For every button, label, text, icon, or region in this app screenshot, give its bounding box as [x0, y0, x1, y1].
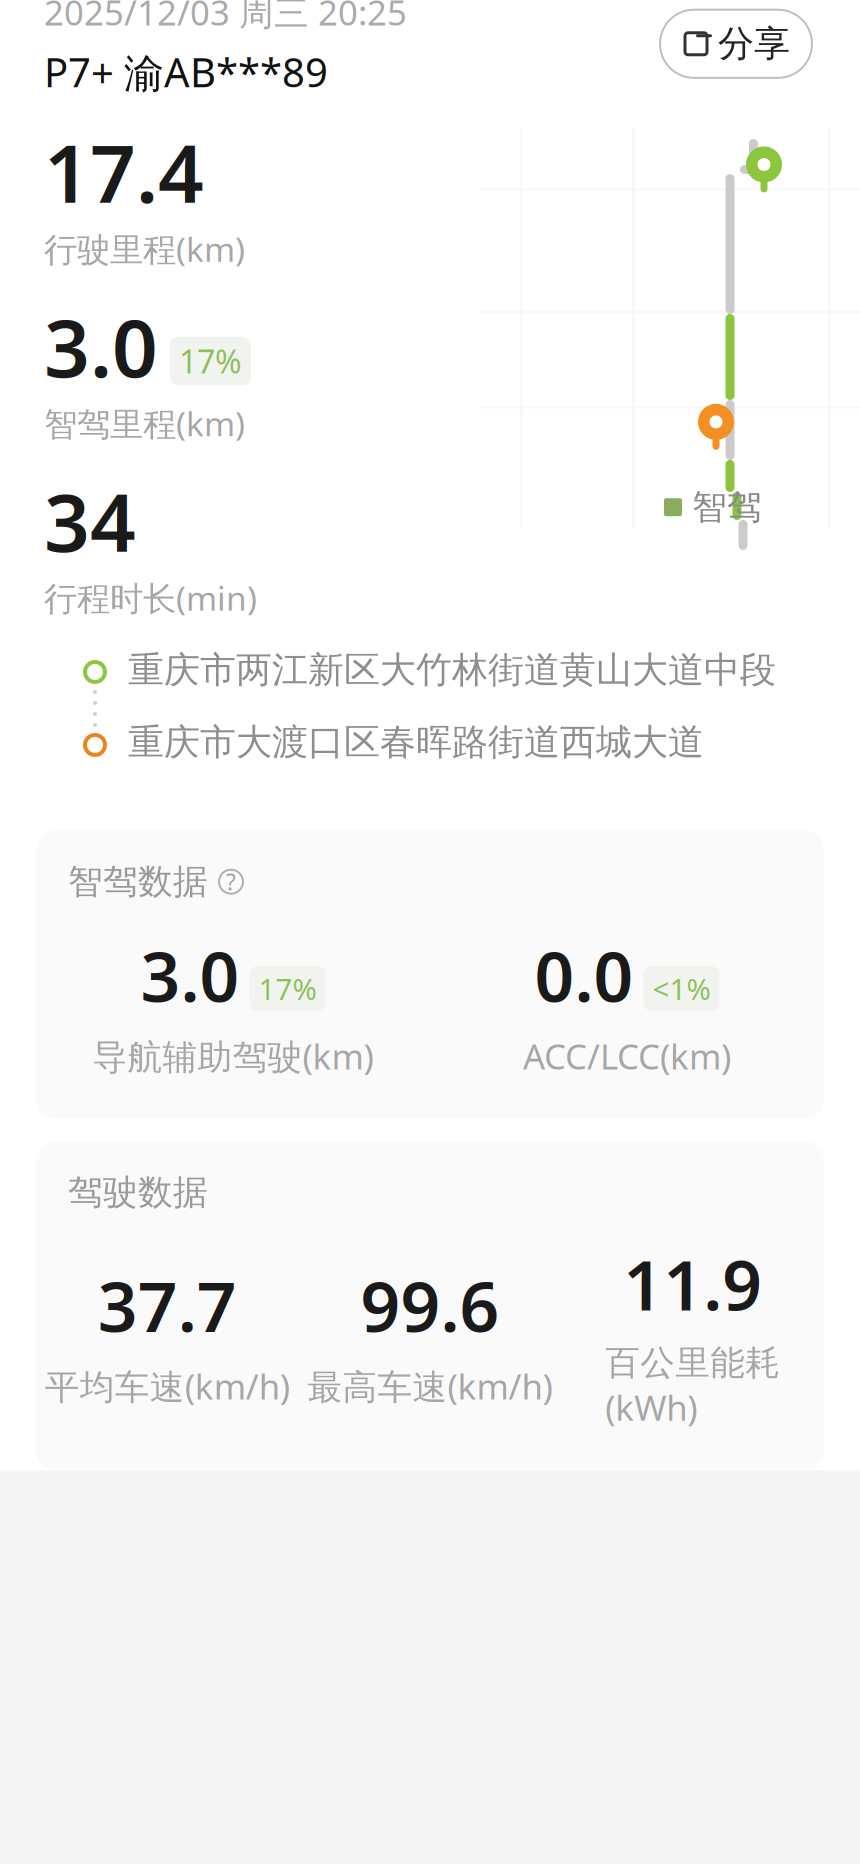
staticText: 平均车速(km/h)	[45, 1363, 290, 1409]
staticText: 百公里能耗(kWh)	[605, 1342, 780, 1430]
staticText: 分享	[718, 22, 790, 66]
staticText: 17%	[258, 969, 316, 1008]
staticText: ?	[226, 867, 236, 897]
staticText: ACC/LCC(km)	[523, 1033, 731, 1079]
staticText: 2025/12/03 周三 20:25	[44, 0, 407, 35]
staticText: 99.6	[360, 1259, 499, 1351]
staticText: 34	[44, 467, 136, 574]
staticText: 37.7	[98, 1259, 237, 1351]
staticText: P7+ 渝AB***89	[44, 45, 328, 98]
staticText: 重庆市大渡口区春晖路街道西城大道	[128, 720, 704, 764]
staticText: 行驶里程(km)	[44, 227, 245, 271]
staticText: 3.0	[44, 293, 158, 399]
staticText: 行程时长(min)	[44, 576, 257, 620]
staticText: 最高车速(km/h)	[307, 1363, 552, 1409]
staticText: 导航辅助驾驶(km)	[92, 1033, 373, 1079]
staticText: 17%	[179, 340, 242, 382]
staticText: 0.0	[534, 929, 633, 1021]
staticText: <1%	[652, 969, 710, 1008]
button[interactable]: 分享	[660, 10, 812, 78]
staticText: 重庆市两江新区大竹林街道黄山大道中段	[128, 648, 776, 692]
staticText: 11.9	[623, 1238, 762, 1330]
staticText: 17.4	[44, 118, 204, 225]
button[interactable]: 智驾数据说明	[216, 867, 246, 897]
staticText: 智驾	[692, 486, 762, 528]
staticText: 驾驶数据	[68, 1171, 208, 1214]
staticText: 智驾数据	[68, 860, 208, 903]
staticText: 智驾里程(km)	[44, 401, 245, 445]
staticText: 3.0	[140, 929, 239, 1021]
